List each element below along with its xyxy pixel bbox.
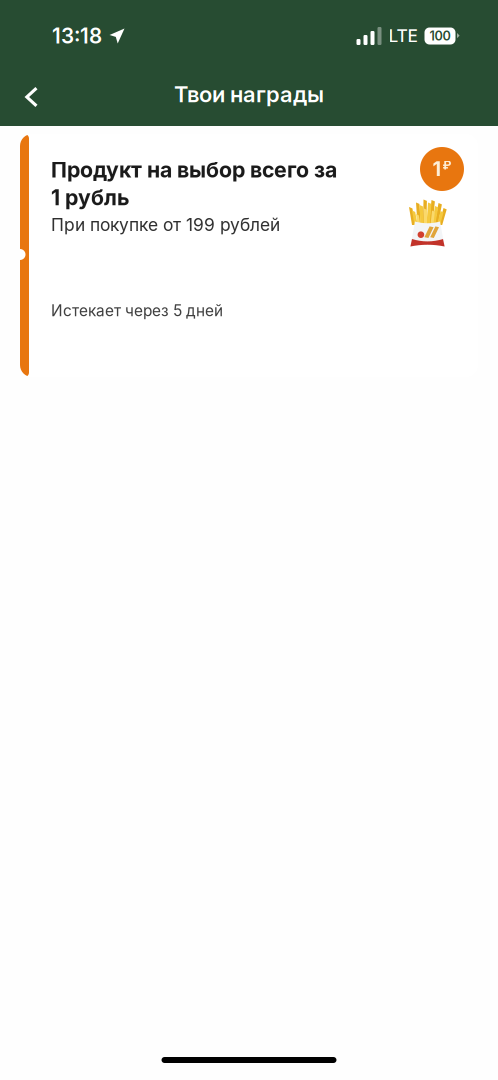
staticText: Продукт на выбор всего за 1 рубль <box>51 156 337 211</box>
button[interactable]: 1 <box>20 134 478 377</box>
staticText: 13:18 <box>52 23 102 48</box>
staticText: ₽ <box>442 158 451 172</box>
staticText: Твои награды <box>174 81 324 108</box>
staticText: 100 <box>429 28 450 44</box>
staticText: Истекает через 5 дней <box>51 301 223 320</box>
button[interactable]: Назад <box>9 58 53 126</box>
staticText: 1 <box>432 157 441 181</box>
staticText: LTE <box>388 25 417 46</box>
staticText: При покупке от 199 рублей <box>51 214 280 235</box>
